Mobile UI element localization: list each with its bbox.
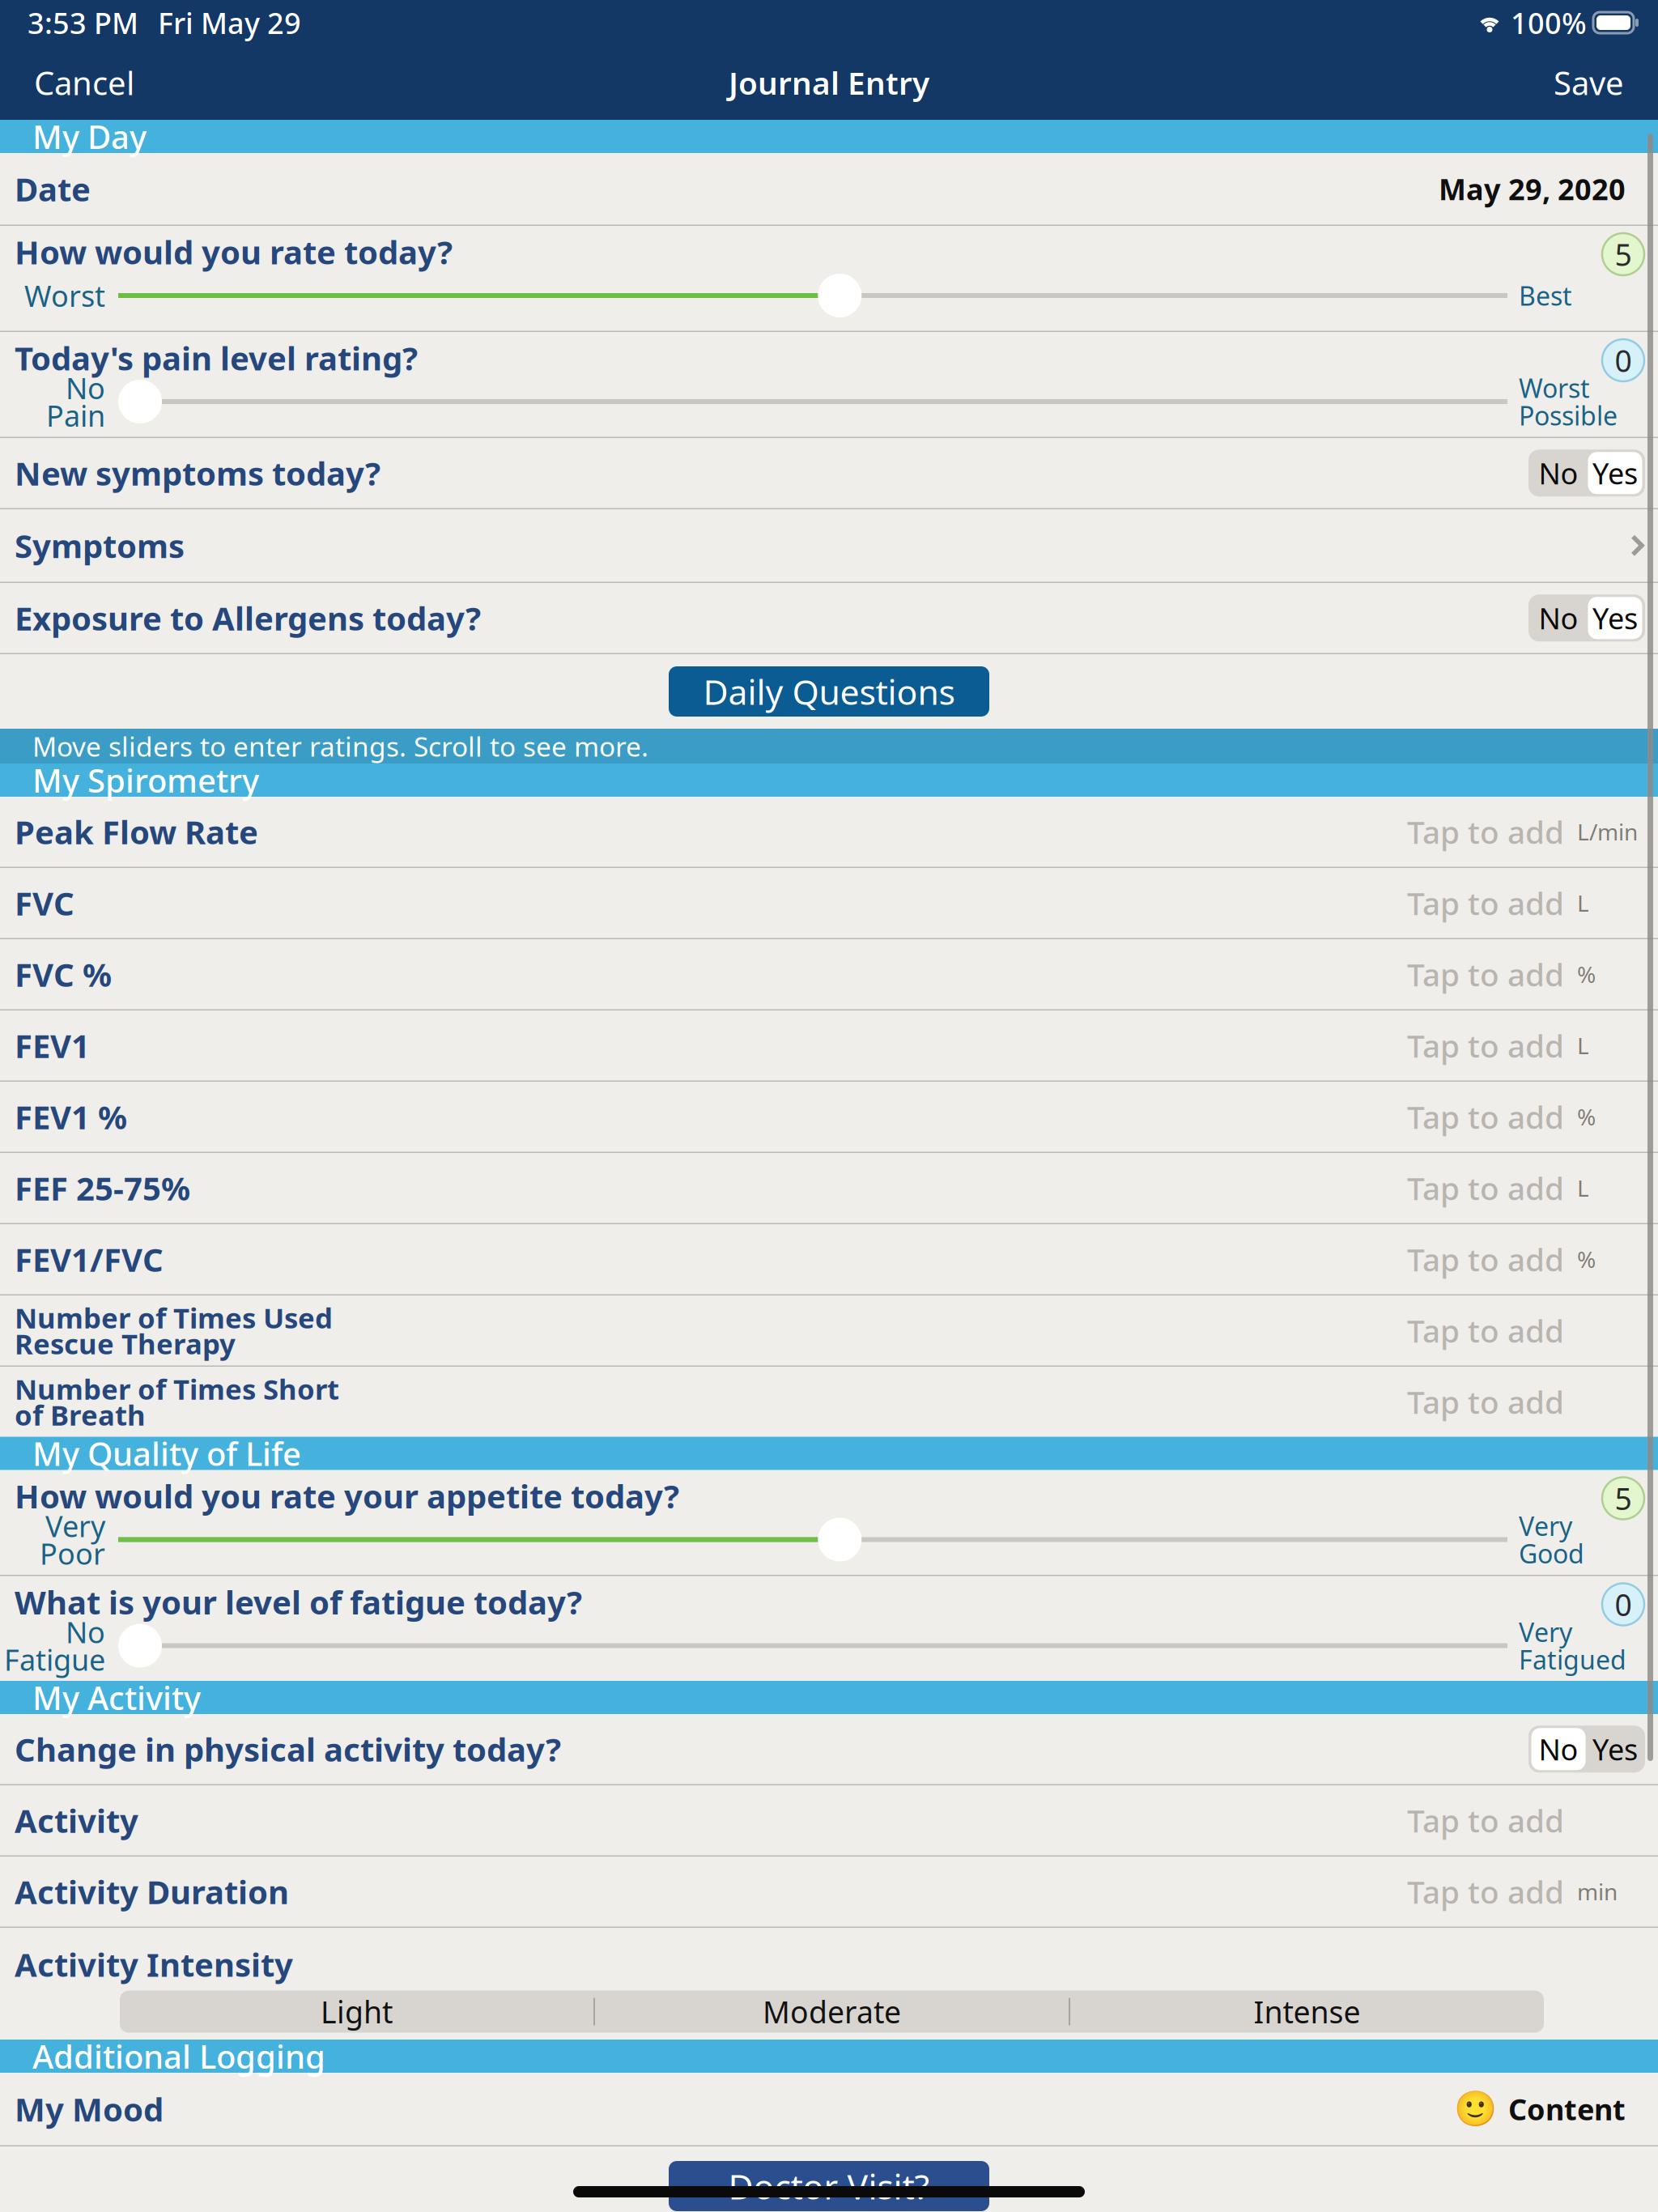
staticText: FEV1 % — [15, 1095, 127, 1138]
staticText: Tap to add — [1407, 1310, 1564, 1351]
staticText: Worst — [24, 276, 105, 315]
staticText: L — [1577, 888, 1589, 918]
staticText: Light — [321, 1992, 393, 2032]
staticText: My Mood — [15, 2087, 164, 2130]
staticText: Daily Questions — [703, 669, 955, 714]
staticText: 5 — [1615, 234, 1632, 274]
staticText: Journal Entry — [729, 62, 929, 103]
button[interactable]: Number of Times Used — [0, 1295, 1658, 1365]
staticText: Very — [1519, 1509, 1572, 1543]
staticText: Tap to add — [1407, 811, 1564, 852]
staticText: Moderate — [763, 1992, 901, 2032]
staticText: Tap to add — [1407, 1238, 1564, 1280]
staticText: Content — [1508, 2090, 1626, 2128]
staticText: No — [1539, 599, 1578, 637]
staticText: Today's pain level rating? — [15, 336, 418, 379]
staticText: Number of Times Used — [15, 1299, 333, 1336]
staticText: Tap to add — [1407, 1025, 1564, 1066]
button[interactable]: Activity — [0, 1785, 1658, 1855]
button[interactable]: FVC — [0, 868, 1658, 938]
staticText: Peak Flow Rate — [15, 810, 258, 853]
staticText: Move sliders to enter ratings. Scroll to… — [32, 728, 648, 764]
button[interactable]: Date — [0, 153, 1658, 225]
staticText: FVC — [15, 881, 74, 924]
staticText: % — [1577, 1102, 1596, 1132]
staticText: 0 — [1615, 1584, 1632, 1624]
staticText: Tap to add — [1407, 882, 1564, 924]
staticText: Fri May 29 — [158, 3, 301, 42]
button[interactable]: Activity Duration — [0, 1857, 1658, 1927]
button[interactable]: Symptoms — [0, 509, 1658, 582]
button[interactable]: Intense — [1070, 1991, 1544, 2033]
staticText: Save — [1554, 61, 1624, 104]
staticText: Worst — [1519, 371, 1590, 405]
staticText: L — [1577, 1030, 1589, 1061]
staticText: min — [1577, 1877, 1618, 1907]
staticText: L — [1577, 1173, 1589, 1203]
staticText: Yes — [1592, 1730, 1638, 1768]
staticText: FVC % — [15, 953, 112, 996]
staticText: Cancel — [34, 61, 134, 104]
staticText: % — [1577, 1244, 1596, 1274]
staticText: Fatigue — [4, 1640, 105, 1679]
staticText: FEV1/FVC — [15, 1238, 164, 1281]
staticText: May 29, 2020 — [1439, 169, 1626, 208]
button[interactable]: No — [1528, 1726, 1645, 1773]
staticText: 5 — [1615, 1478, 1632, 1518]
button[interactable]: FEV1 % — [0, 1082, 1658, 1152]
button[interactable]: Light — [120, 1991, 593, 2033]
staticText: Intense — [1254, 1992, 1360, 2032]
button[interactable]: Peak Flow Rate — [0, 797, 1658, 867]
button[interactable]: FEV1 — [0, 1010, 1658, 1080]
button[interactable]: No — [1528, 450, 1645, 496]
staticText: Activity Duration — [15, 1870, 289, 1913]
staticText: New symptoms today? — [15, 452, 380, 495]
staticText: Number of Times Short — [15, 1370, 339, 1407]
staticText: Activity Intensity — [15, 1943, 293, 1986]
button[interactable]: Save — [1549, 53, 1629, 112]
staticText: Change in physical activity today? — [15, 1728, 561, 1771]
staticText: Yes — [1592, 454, 1638, 492]
staticText: Possible — [1519, 398, 1618, 433]
button[interactable]: FVC % — [0, 939, 1658, 1009]
button[interactable]: Daily Questions — [669, 666, 989, 717]
staticText: Doctor Visit? — [728, 2163, 930, 2209]
staticText: My Quality of Life — [32, 1432, 301, 1475]
staticText: Pain — [46, 396, 105, 435]
button[interactable]: Doctor Visit? — [669, 2161, 989, 2211]
staticText: Tap to add — [1407, 1381, 1564, 1422]
button[interactable]: Number of Times Short — [0, 1367, 1658, 1437]
staticText: My Spirometry — [32, 759, 259, 802]
staticText: Additional Logging — [32, 2035, 325, 2078]
staticText: No — [1539, 1730, 1578, 1768]
staticText: Exposure to Allergens today? — [15, 596, 481, 639]
staticText: 100% — [1511, 3, 1587, 42]
button[interactable]: No — [1528, 594, 1645, 641]
button[interactable]: My Mood — [0, 2073, 1658, 2145]
staticText: Date — [15, 167, 91, 210]
button[interactable]: FEV1/FVC — [0, 1224, 1658, 1294]
staticText: Tap to add — [1407, 1167, 1564, 1209]
staticText: 0 — [1615, 340, 1632, 380]
staticText: L/min — [1577, 817, 1638, 847]
staticText: My Activity — [32, 1676, 201, 1719]
staticText: 🙂 — [1454, 2089, 1497, 2129]
staticText: Symptoms — [15, 524, 185, 567]
staticText: Very — [45, 1506, 105, 1545]
staticText: Best — [1519, 278, 1572, 313]
staticText: Good — [1519, 1536, 1584, 1571]
staticText: Tap to add — [1407, 1096, 1564, 1137]
staticText: Fatigued — [1519, 1642, 1626, 1677]
staticText: No — [1539, 454, 1578, 492]
button[interactable]: Moderate — [595, 1991, 1069, 2033]
button[interactable]: Cancel — [29, 53, 139, 112]
staticText: Poor — [40, 1534, 105, 1573]
staticText: Tap to add — [1407, 1800, 1564, 1841]
staticText: No — [66, 368, 105, 407]
staticText: Very — [1519, 1615, 1572, 1649]
staticText: Yes — [1592, 599, 1638, 637]
button[interactable]: FEF 25-75% — [0, 1153, 1658, 1223]
staticText: 3:53 PM — [28, 3, 138, 42]
staticText: of Breath — [15, 1396, 146, 1433]
staticText: Tap to add — [1407, 953, 1564, 995]
